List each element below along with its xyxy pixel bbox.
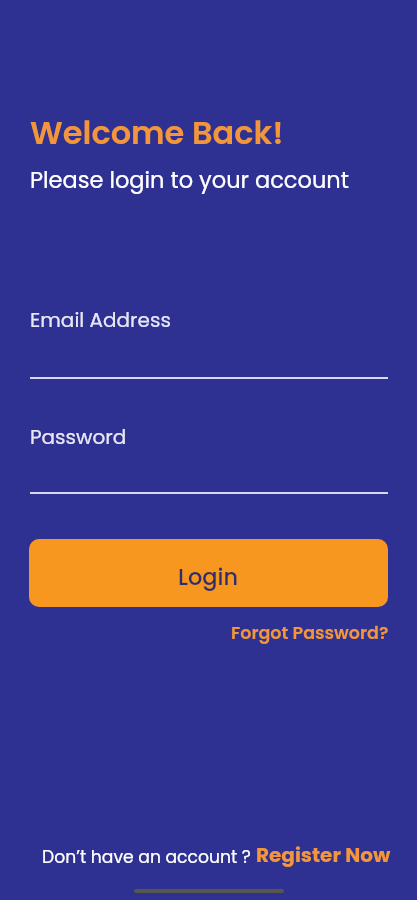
staticText: Email Address [30, 306, 171, 334]
button[interactable]: Forgot Password? [231, 621, 389, 646]
staticText: Welcome Back! [30, 110, 284, 155]
button[interactable]: Register Now [256, 841, 391, 869]
staticText: Password [30, 423, 127, 451]
staticText: Login [178, 561, 239, 592]
button[interactable]: Login [29, 539, 388, 607]
staticText: Please login to your account [30, 164, 349, 195]
staticText: Don’t have an account ? [42, 845, 256, 869]
